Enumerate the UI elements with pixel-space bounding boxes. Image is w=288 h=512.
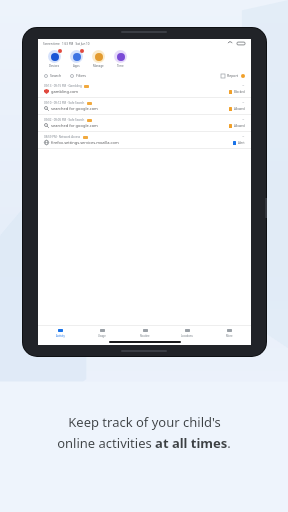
button[interactable]: 09:10 · 09:12 PM · Safe Search [38, 98, 251, 115]
staticText: ··· [242, 118, 245, 122]
button[interactable]: Devices [43, 50, 65, 68]
staticText: 09:02 · 09:05 PM · Safe Search [44, 118, 85, 122]
staticText: 09:10 · 09:12 PM · Safe Search [44, 101, 85, 105]
staticText: Usage [98, 334, 106, 338]
staticText: Blocked [234, 90, 245, 94]
staticText: Report [227, 73, 239, 78]
staticText: More [226, 334, 233, 338]
button[interactable]: Time [109, 50, 131, 68]
button[interactable]: Report [221, 73, 245, 78]
button[interactable]: Usage [82, 328, 122, 338]
button[interactable]: 08:59 PM · Network Access [38, 132, 251, 149]
staticText: 09:13 · 09:15 PM · Gambling [44, 84, 82, 88]
staticText: firefox.settings.services.mozilla.com [51, 140, 119, 145]
staticText: Routine [140, 334, 150, 338]
staticText: Filters [76, 73, 86, 78]
button[interactable]: Activity [40, 328, 80, 338]
staticText: Search [50, 73, 62, 78]
staticText: Devices [49, 64, 59, 68]
button[interactable]: 09:13 · 09:15 PM · Gambling [38, 81, 251, 98]
button[interactable]: 09:02 · 09:05 PM · Safe Search [38, 115, 251, 132]
staticText: gambling.com [51, 89, 79, 94]
staticText: ··· [242, 101, 245, 105]
staticText: Keep track of your child's [68, 413, 221, 431]
staticText: ··· [242, 84, 245, 88]
button[interactable]: Manage [87, 50, 109, 68]
button[interactable]: Filters [70, 73, 86, 78]
staticText: Activity [56, 334, 65, 338]
staticText: ··· [242, 135, 245, 139]
staticText: Manage [93, 64, 104, 68]
button[interactable]: Routine [125, 328, 165, 338]
staticText: Locations [181, 334, 193, 338]
staticText: 08:59 PM · Network Access [44, 135, 81, 139]
staticText: Allowed [234, 107, 245, 111]
staticText: Apps [73, 64, 80, 68]
staticText: searched for google.com [51, 106, 98, 111]
staticText: Alert [238, 141, 245, 145]
staticText: Time [117, 64, 124, 68]
button[interactable]: More [209, 328, 249, 338]
staticText: Screen time 1:53 PM Sat Jun 10 [43, 42, 90, 46]
button[interactable]: Apps [65, 50, 87, 68]
staticText: searched for google.com [51, 123, 98, 128]
button[interactable]: Search [44, 73, 62, 78]
staticText: Allowed [234, 124, 245, 128]
staticText: online activities at all times. [57, 434, 231, 452]
button[interactable]: Locations [167, 328, 207, 338]
